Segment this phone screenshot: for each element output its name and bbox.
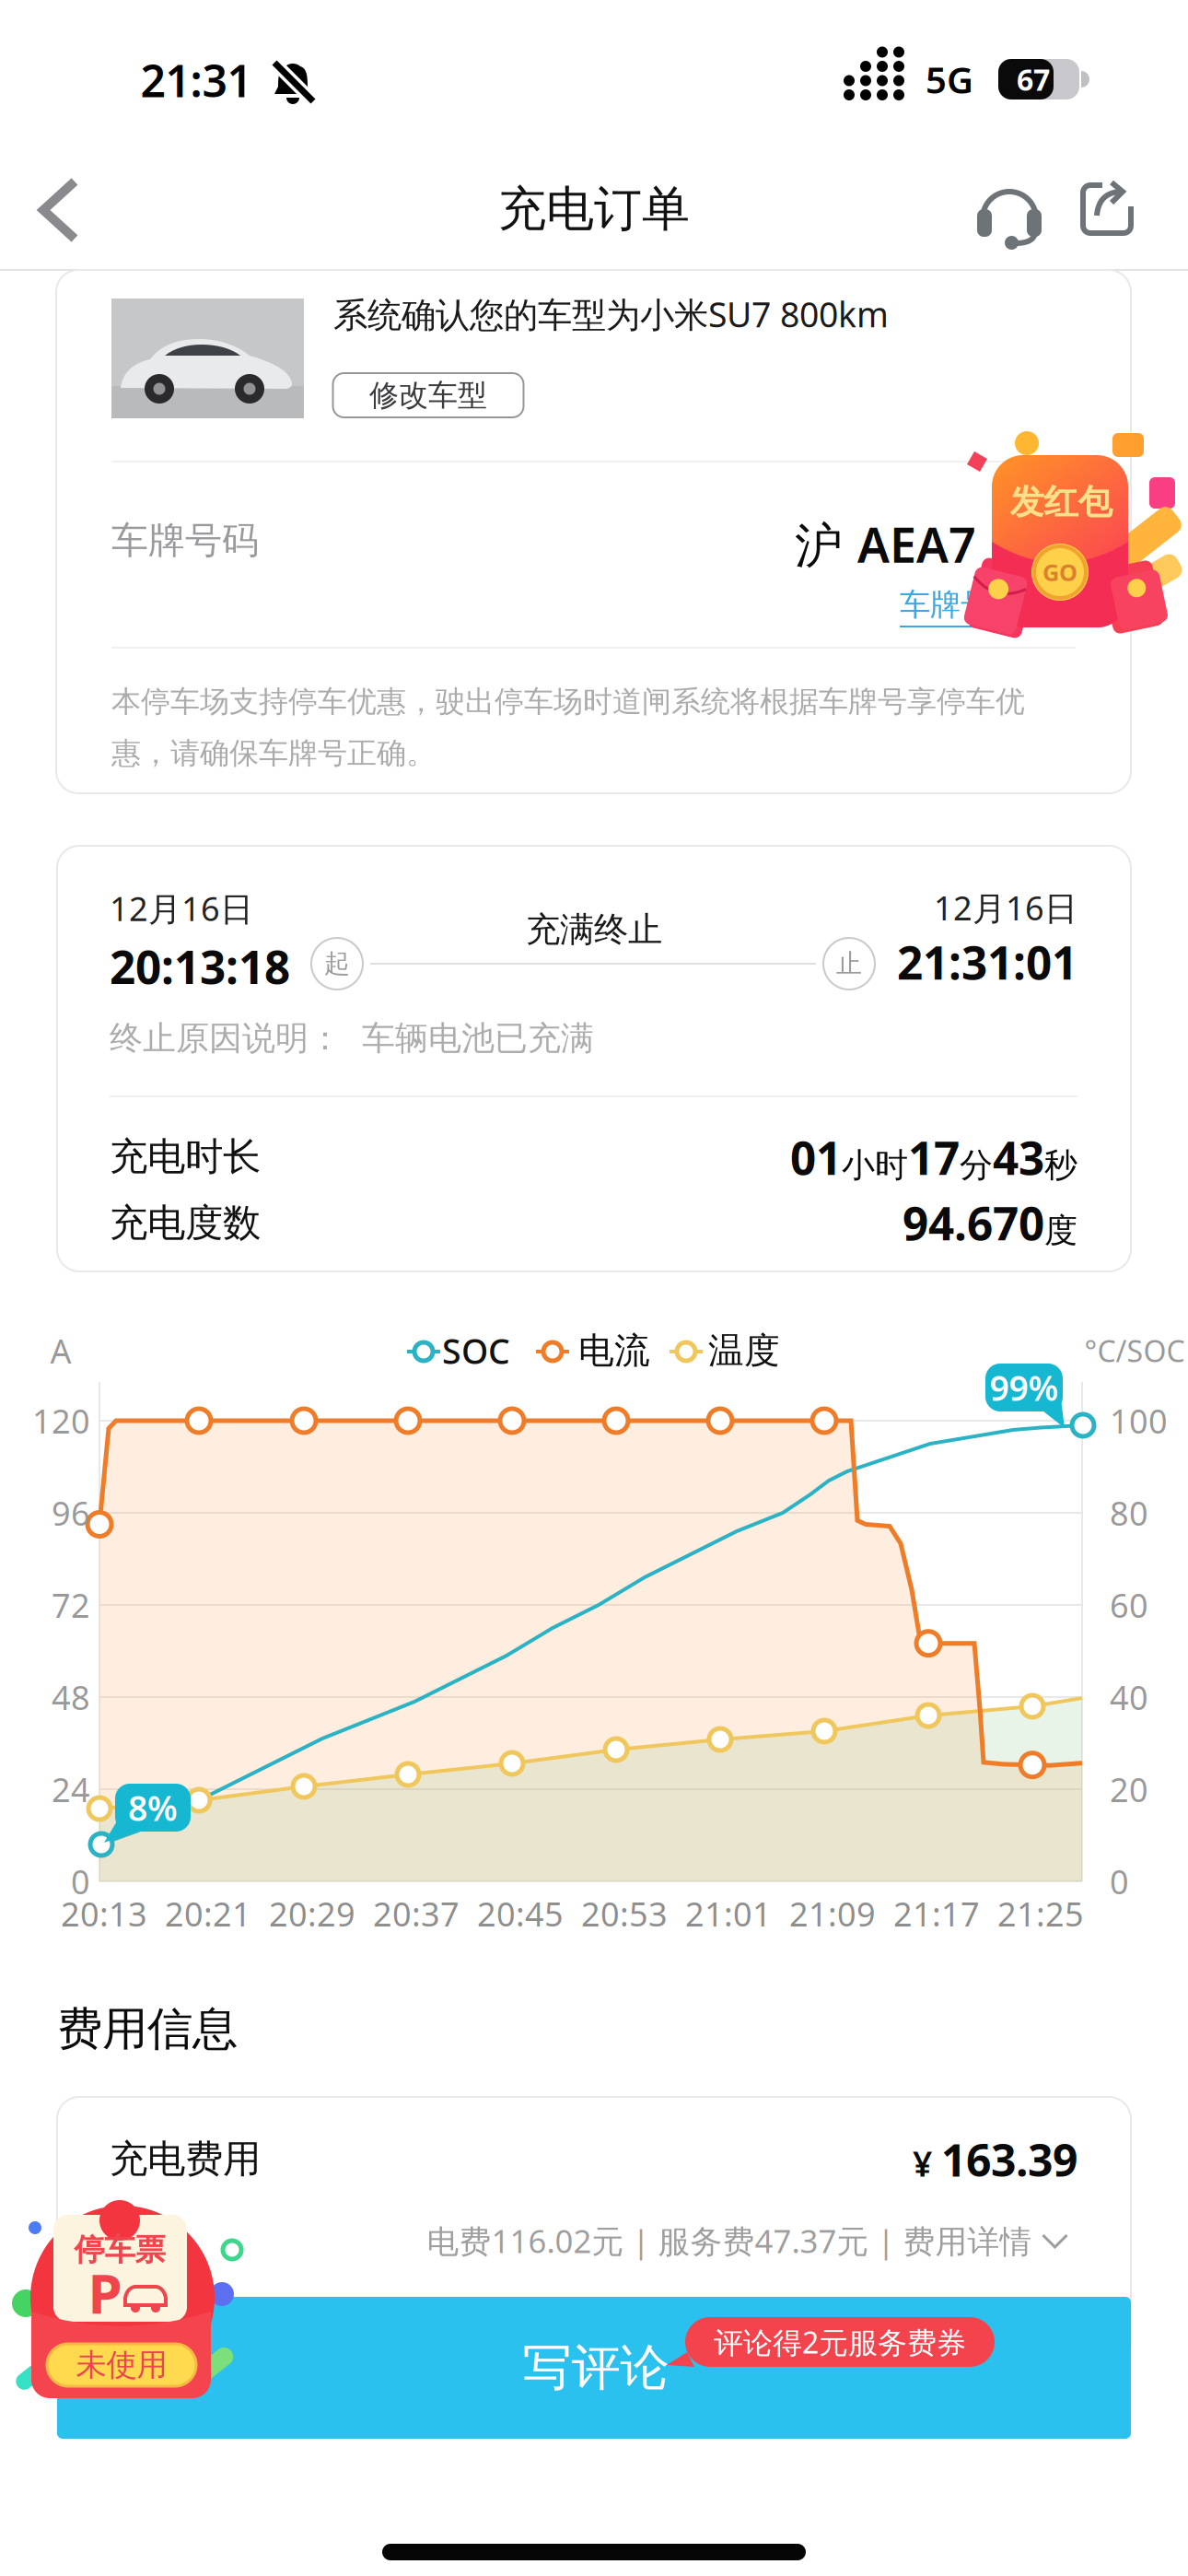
staticText: 沪 AEA7: [795, 512, 976, 576]
staticText: 21:09: [789, 1892, 876, 1936]
staticText: 21:31: [140, 51, 252, 109]
staticText: 写评论: [523, 2338, 669, 2398]
staticText: P: [88, 2256, 122, 2329]
staticText: 车牌号码: [111, 518, 259, 563]
staticText: 0: [1110, 1859, 1129, 1903]
staticText: 起: [324, 948, 350, 980]
staticText: SOC: [442, 1328, 510, 1373]
staticText: 99%: [990, 1365, 1059, 1410]
staticText: 20:13: [61, 1892, 147, 1936]
staticText: 80: [1110, 1491, 1148, 1535]
staticText: 21:25: [997, 1892, 1084, 1936]
staticText: ¥ 163.39: [913, 2130, 1077, 2189]
staticText: 21:31:01: [897, 932, 1077, 992]
staticText: 电费116.02元 | 服务费47.37元 | 费用详情: [427, 2219, 1032, 2262]
staticText: 120: [32, 1399, 90, 1443]
staticText: 48: [52, 1675, 90, 1719]
staticText: 修改车型: [369, 377, 487, 413]
staticText: 充电费用: [110, 2136, 261, 2182]
staticText: 96: [52, 1491, 90, 1535]
staticText: 21:01: [685, 1892, 772, 1936]
staticText: 0: [71, 1859, 90, 1903]
button[interactable]: 发红包: [949, 424, 1179, 645]
button[interactable]: 分享: [1078, 181, 1137, 240]
staticText: 惠，请确保车牌号正确。: [111, 735, 436, 771]
staticText: 20:37: [373, 1892, 460, 1936]
staticText: 温度: [708, 1329, 780, 1373]
staticText: 充电订单: [498, 180, 690, 239]
staticText: 发红包: [1010, 481, 1112, 523]
staticText: °C/SOC: [1084, 1331, 1185, 1370]
staticText: 20: [1110, 1767, 1148, 1811]
staticText: 100: [1110, 1399, 1168, 1443]
button[interactable]: 费用详情: [427, 2219, 1069, 2262]
staticText: 系统确认您的车型为小米SU7 800km: [333, 291, 889, 337]
staticText: 72: [52, 1583, 90, 1627]
staticText: 充电时长: [110, 1133, 261, 1180]
staticText: 20:53: [581, 1892, 668, 1936]
staticText: 车牌号: [900, 586, 991, 624]
staticText: 停车票: [74, 2231, 165, 2269]
button[interactable]: 停车票: [0, 2193, 249, 2405]
staticText: 费用信息: [57, 2001, 238, 2057]
staticText: 5G: [926, 55, 973, 104]
staticText: 20:29: [269, 1892, 355, 1936]
staticText: 8%: [128, 1785, 178, 1830]
button[interactable]: 返回: [31, 174, 87, 246]
button[interactable]: 写评论: [57, 2297, 1131, 2439]
button[interactable]: 车牌号: [900, 586, 996, 628]
staticText: A: [50, 1329, 71, 1373]
staticText: 60: [1110, 1583, 1148, 1627]
staticText: 67: [1017, 60, 1050, 99]
staticText: 止: [836, 948, 862, 980]
staticText: GO: [1042, 557, 1077, 588]
staticText: 终止原因说明： 车辆电池已充满: [110, 1018, 594, 1059]
staticText: 充满终止: [526, 909, 662, 951]
staticText: 未使用: [76, 2346, 167, 2384]
staticText: 12月16日: [934, 885, 1077, 930]
staticText: 20:21: [165, 1892, 251, 1936]
staticText: 本停车场支持停车优惠，驶出停车场时道闸系统将根据车牌号享停车优: [111, 684, 1025, 720]
staticText: 充电度数: [110, 1200, 261, 1246]
staticText: 20:13:18: [110, 936, 290, 996]
staticText: 24: [52, 1767, 90, 1811]
staticText: 40: [1110, 1675, 1148, 1719]
staticText: 电流: [578, 1329, 650, 1373]
button[interactable]: 客服: [976, 174, 1042, 248]
staticText: 20:45: [477, 1892, 564, 1936]
staticText: 12月16日: [110, 886, 253, 930]
staticText: 21:17: [893, 1892, 980, 1936]
staticText: 01小时17分43秒: [790, 1127, 1077, 1187]
staticText: 评论得2元服务费券: [714, 2322, 966, 2362]
button[interactable]: 修改车型: [333, 373, 524, 417]
staticText: 94.670度: [903, 1192, 1077, 1253]
